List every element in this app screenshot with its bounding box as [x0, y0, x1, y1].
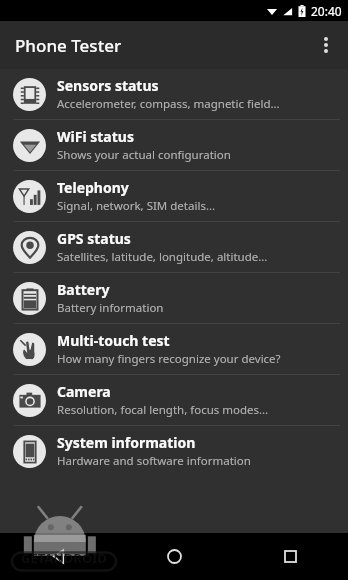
button[interactable]: System information	[0, 426, 348, 476]
button[interactable]: Home	[150, 533, 198, 580]
staticText: How many fingers recognize your device?	[57, 351, 281, 367]
button[interactable]: More options	[304, 23, 348, 67]
staticText: Phone Tester	[15, 34, 122, 57]
button[interactable]: Telephony	[0, 171, 348, 221]
staticText: System information	[57, 433, 196, 452]
staticText: Satellites, latitude, longitude, altitud…	[57, 249, 268, 265]
staticText: Signal, network, SIM details…	[57, 198, 215, 214]
button[interactable]: Camera	[0, 375, 348, 425]
staticText: Sensors status	[57, 76, 159, 95]
staticText: Telephony	[57, 178, 129, 197]
staticText: WiFi status	[57, 127, 134, 146]
staticText: Battery	[57, 280, 110, 299]
button[interactable]: Sensors status	[0, 69, 348, 119]
button[interactable]: Battery	[0, 273, 348, 323]
staticText: GETANDROID	[21, 549, 107, 567]
staticText: Resolution, focal length, focus modes…	[57, 402, 269, 418]
staticText: GPS status	[57, 229, 131, 248]
button[interactable]: Multi-touch test	[0, 324, 348, 374]
button[interactable]: Back	[34, 533, 82, 580]
staticText: Shows your actual configuration	[57, 147, 231, 163]
button[interactable]: Recent apps	[266, 533, 314, 580]
staticText: 20:40	[311, 3, 342, 19]
button[interactable]: GPS status	[0, 222, 348, 272]
staticText: Multi-touch test	[57, 331, 170, 350]
staticText: Accelerometer, compass, magnetic field…	[57, 96, 280, 112]
button[interactable]: WiFi status	[0, 120, 348, 170]
staticText: Hardware and software information	[57, 453, 251, 469]
staticText: Camera	[57, 382, 111, 401]
staticText: Battery information	[57, 300, 164, 316]
